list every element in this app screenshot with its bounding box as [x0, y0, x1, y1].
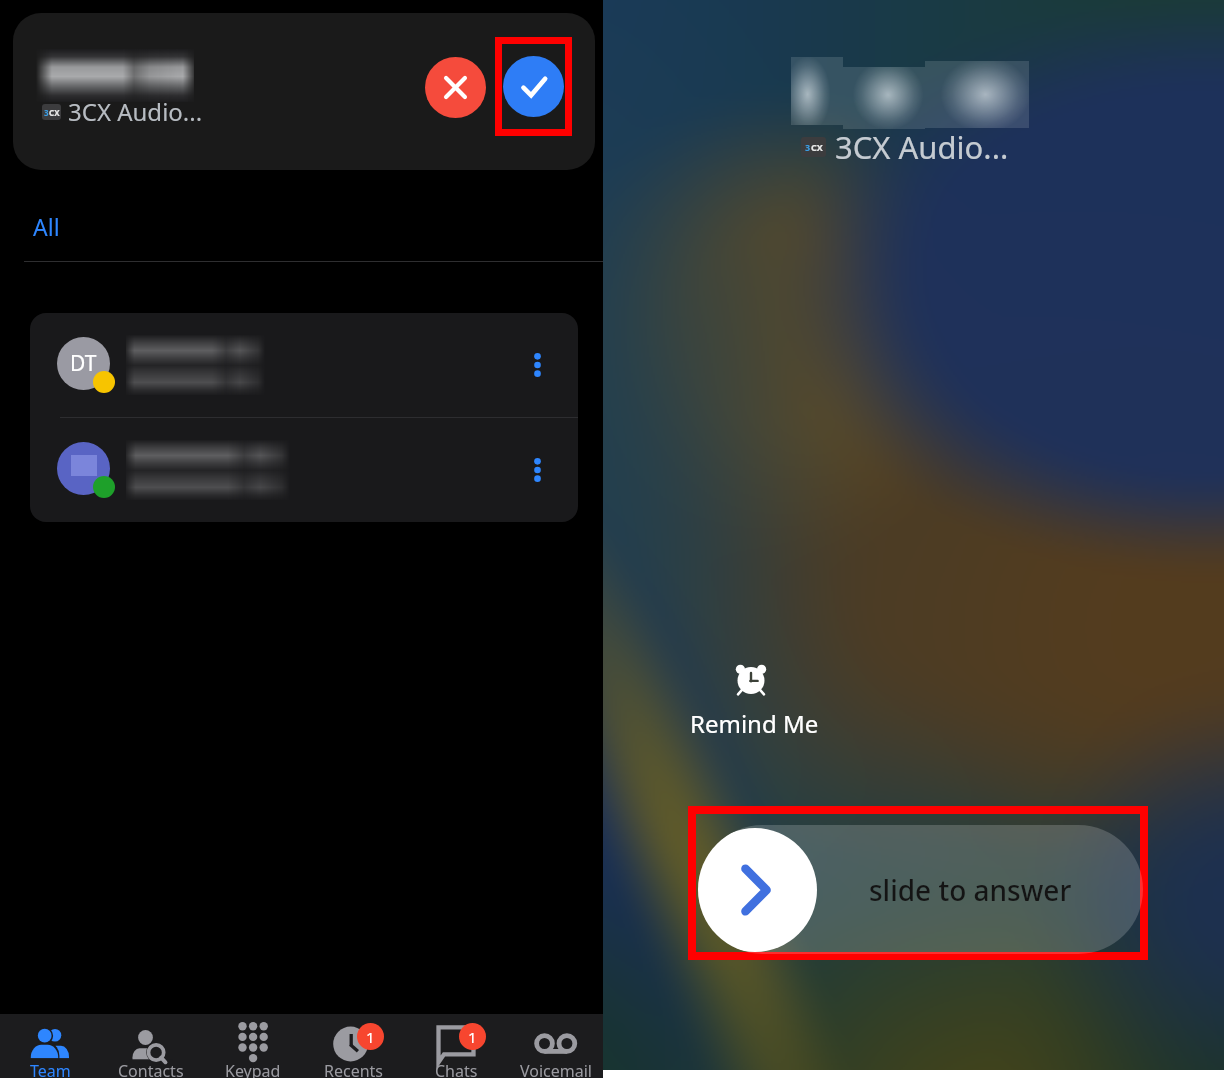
staticText: 1 — [468, 1027, 477, 1047]
button[interactable]: Decline call — [425, 57, 486, 118]
button[interactable]: 1 — [304, 1014, 404, 1078]
staticText: Contacts — [118, 1060, 184, 1078]
staticText: 3CX Audio... — [835, 126, 1009, 168]
staticText: 3 — [44, 107, 49, 118]
button[interactable]: More options — [511, 339, 563, 391]
staticText: 3CX Audio... — [68, 95, 203, 128]
button[interactable]: All — [20, 203, 73, 250]
button[interactable]: slide to answer — [698, 825, 1143, 954]
button[interactable]: DT — [30, 313, 578, 417]
staticText: All — [33, 211, 60, 242]
staticText: 1 — [366, 1027, 375, 1047]
button[interactable]: Remind Me — [690, 657, 819, 740]
staticText: CX — [49, 107, 60, 118]
button[interactable]: Voicemail — [506, 1014, 603, 1078]
staticText: Recents — [324, 1060, 384, 1078]
staticText: slide to answer — [869, 871, 1072, 909]
button[interactable]: 1 — [406, 1014, 506, 1078]
staticText: Remind Me — [690, 707, 819, 740]
staticText: Keypad — [225, 1060, 281, 1078]
button[interactable]: Contacts — [101, 1014, 201, 1078]
button[interactable]: Team — [0, 1014, 100, 1078]
staticText: CX — [811, 141, 823, 153]
staticText: DT — [70, 349, 97, 378]
staticText: 3 — [805, 141, 811, 153]
button[interactable]: More options — [511, 444, 563, 496]
button[interactable]: 3 — [13, 13, 595, 170]
button[interactable]: Answer call — [503, 56, 564, 117]
button[interactable]: Keypad — [203, 1014, 303, 1078]
staticText: Voicemail — [520, 1060, 592, 1078]
staticText: Team — [30, 1060, 71, 1078]
staticText: Chats — [435, 1060, 478, 1078]
button[interactable]: More options — [30, 418, 578, 522]
